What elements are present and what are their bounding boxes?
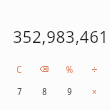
button[interactable]: 8	[32, 80, 57, 102]
staticText: 8	[42, 86, 47, 97]
button[interactable]: 9	[57, 80, 82, 102]
button[interactable]: Backspace	[32, 58, 57, 80]
button[interactable]: 7	[6, 80, 32, 102]
button[interactable]: %	[57, 58, 82, 80]
button[interactable]: Divide	[82, 58, 107, 80]
staticText: 9	[67, 86, 72, 97]
staticText: 352,983,461	[13, 26, 109, 48]
staticText: C	[16, 64, 22, 75]
button[interactable]: C	[6, 58, 32, 80]
staticText: 7	[17, 86, 22, 97]
button[interactable]: ×	[82, 80, 107, 102]
staticText: ×	[92, 86, 97, 97]
staticText: %	[66, 64, 73, 75]
